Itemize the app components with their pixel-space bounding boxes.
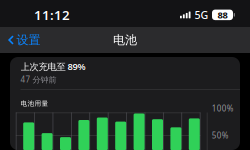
- staticText: 电池用量: [20, 99, 48, 107]
- button[interactable]: 上次充电至 89%: [10, 57, 240, 89]
- staticText: 11:12: [34, 6, 70, 24]
- staticText: 设置: [17, 33, 41, 47]
- staticText: 电池: [113, 33, 137, 47]
- button[interactable]: 设置: [2, 27, 47, 53]
- staticText: 100%: [212, 103, 234, 114]
- staticText: 50%: [212, 130, 229, 141]
- staticText: 上次充电至 89%: [20, 60, 85, 73]
- staticText: 5G: [194, 8, 208, 22]
- staticText: 47 分钟前: [20, 74, 56, 85]
- staticText: 88: [217, 9, 227, 21]
